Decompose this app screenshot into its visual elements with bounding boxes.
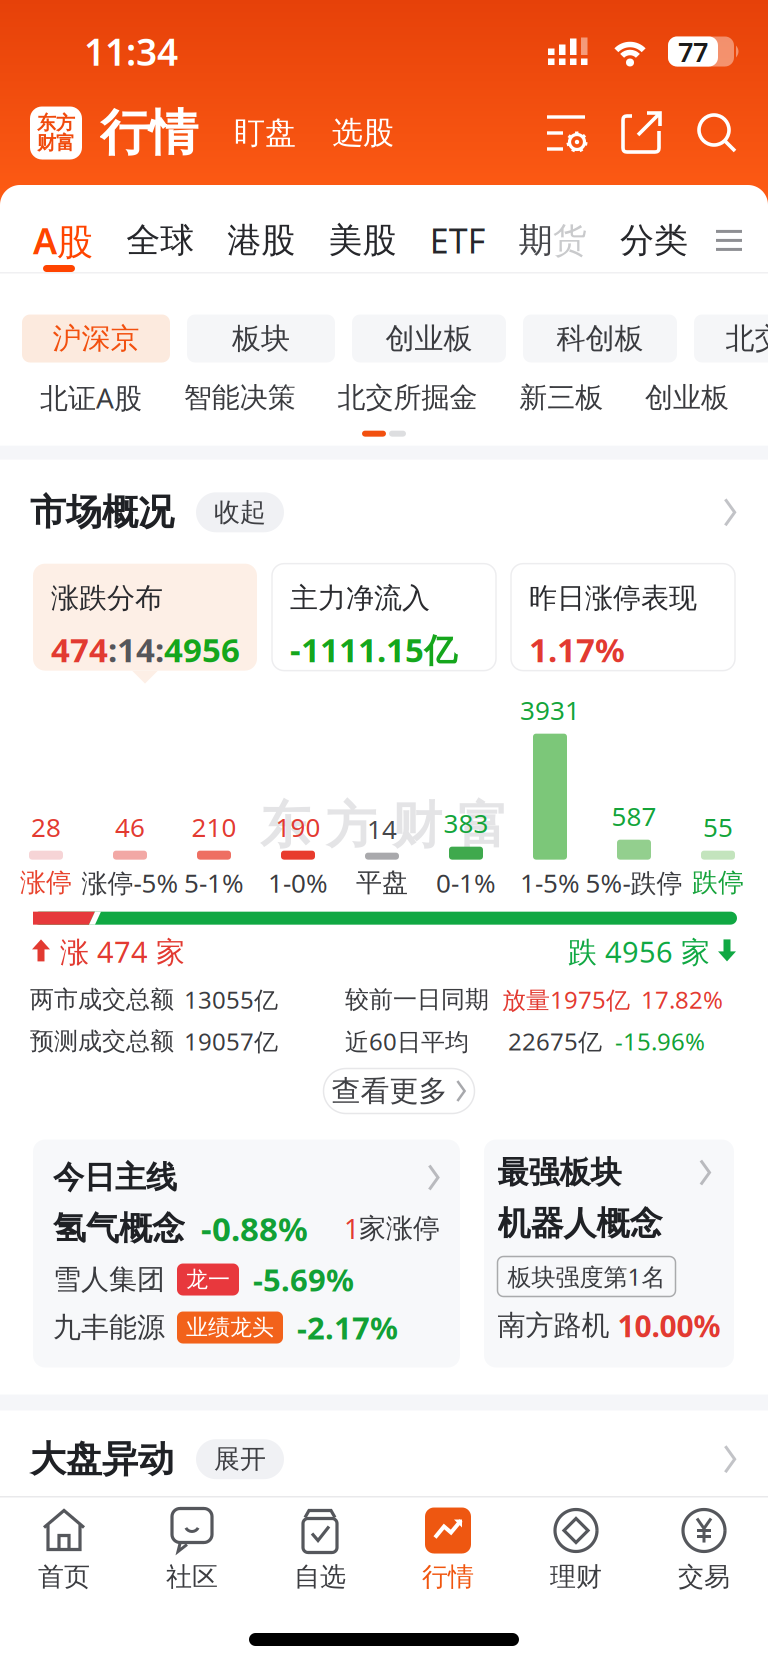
- button[interactable]: 更多分类: [716, 228, 742, 252]
- staticText: 收起: [214, 496, 266, 529]
- staticText: 创业板: [385, 320, 472, 357]
- staticText: 474: [51, 627, 108, 672]
- button[interactable]: 沪深京: [22, 314, 170, 362]
- button[interactable]: 收起: [196, 492, 284, 532]
- staticText: A股: [33, 216, 93, 265]
- button[interactable]: 交易: [640, 1507, 768, 1593]
- staticText: 家涨停: [359, 1211, 440, 1245]
- button[interactable]: 全球: [126, 219, 194, 262]
- staticText: 1: [344, 1210, 359, 1247]
- button[interactable]: ETF: [430, 217, 486, 264]
- button[interactable]: 涨跌分布: [33, 564, 257, 671]
- button[interactable]: 搜索: [692, 109, 740, 157]
- staticText: 行情: [100, 102, 198, 164]
- staticText: 沪深京: [52, 320, 139, 357]
- button[interactable]: 选股: [332, 113, 394, 153]
- staticText: 科创板: [556, 320, 643, 357]
- staticText: 交易: [678, 1560, 730, 1593]
- button[interactable]: 美股: [328, 219, 396, 262]
- staticText: 东方: [37, 111, 75, 135]
- staticText: 智能决策: [184, 380, 296, 415]
- staticText: 19057亿: [184, 1025, 278, 1057]
- staticText: 盯盘: [234, 113, 296, 153]
- button[interactable]: 分类: [620, 219, 688, 262]
- button[interactable]: 智能决策: [184, 380, 296, 415]
- button[interactable]: 社区: [128, 1507, 256, 1593]
- button[interactable]: 今日主线: [33, 1139, 460, 1367]
- staticText: 0-1%: [436, 865, 496, 900]
- button[interactable]: 科创板: [523, 314, 677, 362]
- button[interactable]: 盯盘: [234, 113, 296, 153]
- button[interactable]: 自选: [256, 1507, 384, 1593]
- staticText: 查看更多: [331, 1073, 447, 1109]
- staticText: 自选: [294, 1560, 346, 1593]
- staticText: 东方财富: [260, 794, 508, 857]
- staticText: 业绩龙头: [186, 1314, 274, 1341]
- staticText: 3931: [520, 692, 580, 728]
- staticText: 较前一日同期: [345, 984, 489, 1015]
- staticText: 两市成交总额: [30, 984, 174, 1015]
- staticText: 新三板: [519, 380, 603, 415]
- staticText: 11:34: [84, 26, 178, 77]
- staticText: 主力净流入: [290, 581, 430, 616]
- staticText: 南方路机: [497, 1308, 609, 1343]
- staticText: 氢气概念: [53, 1208, 185, 1249]
- button[interactable]: 查看更多: [323, 1068, 474, 1113]
- staticText: -15.96%: [615, 1025, 705, 1057]
- staticText: 涨 474 家: [60, 932, 185, 971]
- staticText: 昨日涨停表现: [529, 581, 697, 616]
- button[interactable]: 展开: [196, 1439, 284, 1479]
- button[interactable]: 昨日涨停表现: [511, 564, 735, 671]
- staticText: 美股: [328, 219, 396, 262]
- staticText: 4956: [164, 627, 240, 672]
- staticText: :: [108, 627, 117, 672]
- staticText: 13055亿: [184, 983, 278, 1016]
- staticText: 展开: [214, 1443, 266, 1476]
- button[interactable]: 北证A股: [40, 378, 142, 417]
- button[interactable]: 东方财富: [30, 106, 82, 159]
- button[interactable]: 北交所: [694, 314, 768, 362]
- button[interactable]: 港股: [227, 219, 295, 262]
- staticText: 涨停-5%: [81, 865, 178, 900]
- button[interactable]: 创业板: [352, 314, 506, 362]
- staticText: 全球: [126, 219, 194, 262]
- button[interactable]: 板块: [187, 314, 335, 362]
- staticText: 46: [115, 809, 145, 845]
- button[interactable]: A股: [33, 216, 93, 265]
- staticText: 1-5%: [520, 865, 580, 900]
- staticText: 跌停: [692, 866, 744, 899]
- staticText: 龙一: [186, 1266, 230, 1293]
- staticText: 选股: [332, 113, 394, 153]
- staticText: 机器人概念: [497, 1203, 662, 1244]
- button[interactable]: 查看市场概况: [722, 498, 738, 526]
- staticText: 社区: [166, 1560, 218, 1593]
- staticText: 首页: [38, 1560, 90, 1593]
- staticText: 55: [703, 809, 733, 845]
- button[interactable]: 定制: [544, 109, 592, 157]
- staticText: 近60日平均: [345, 1025, 469, 1057]
- staticText: 理财: [550, 1560, 602, 1593]
- staticText: ETF: [430, 217, 486, 264]
- button[interactable]: 创业板: [645, 380, 729, 415]
- staticText: 190: [275, 809, 320, 845]
- button[interactable]: 首页: [0, 1507, 128, 1593]
- staticText: 210: [191, 809, 236, 845]
- button[interactable]: 北交所掘金: [337, 380, 477, 415]
- staticText: 市场概况: [30, 490, 174, 535]
- staticText: 板块强度第1名: [507, 1260, 665, 1293]
- button[interactable]: 期: [519, 219, 587, 262]
- button[interactable]: 分享: [618, 109, 666, 157]
- staticText: -2.17%: [297, 1306, 398, 1349]
- staticText: 行情: [422, 1560, 474, 1593]
- staticText: -1111.15亿: [290, 627, 457, 672]
- staticText: -5.69%: [253, 1258, 354, 1301]
- button[interactable]: 行情: [384, 1507, 512, 1593]
- button[interactable]: 主力净流入: [272, 564, 496, 671]
- button[interactable]: 理财: [512, 1507, 640, 1593]
- staticText: 14: [117, 627, 155, 672]
- button[interactable]: 查看大盘异动: [722, 1445, 738, 1473]
- staticText: 1-0%: [268, 865, 328, 900]
- staticText: 383: [443, 805, 488, 841]
- button[interactable]: 最强板块: [484, 1139, 734, 1367]
- button[interactable]: 新三板: [519, 380, 603, 415]
